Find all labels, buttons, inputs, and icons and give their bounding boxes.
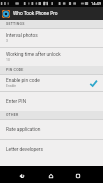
- button[interactable]: Home: [43, 166, 59, 183]
- staticText: Rate application: [6, 127, 41, 133]
- staticText: 14:49: [91, 1, 101, 6]
- staticText: Enable pin code: [6, 78, 40, 84]
- staticText: 10: [6, 58, 10, 62]
- button[interactable]: Back: [14, 166, 30, 183]
- button[interactable]: Letter developers: [0, 140, 103, 159]
- staticText: Letter developers: [6, 147, 43, 153]
- button[interactable]: Rate application: [0, 120, 103, 139]
- button[interactable]: Enable pin code: [0, 75, 103, 91]
- staticText: PIN CODE: [6, 68, 24, 72]
- button[interactable]: Recent apps: [70, 166, 86, 183]
- staticText: Enable: [6, 84, 17, 88]
- staticText: 3: [6, 39, 8, 43]
- staticText: Interval photos: [6, 33, 38, 39]
- staticText: OTHER: [6, 113, 19, 117]
- staticText: SETTINGS: [6, 22, 25, 26]
- button[interactable]: Interval photos: [0, 29, 103, 47]
- staticText: Working time after unlock: [6, 52, 61, 58]
- button[interactable]: Enter PIN: [0, 92, 103, 111]
- staticText: Enter PIN: [6, 99, 27, 105]
- staticText: Who Took Phone Pro: [13, 11, 58, 17]
- button[interactable]: Working time after unlock: [0, 48, 103, 66]
